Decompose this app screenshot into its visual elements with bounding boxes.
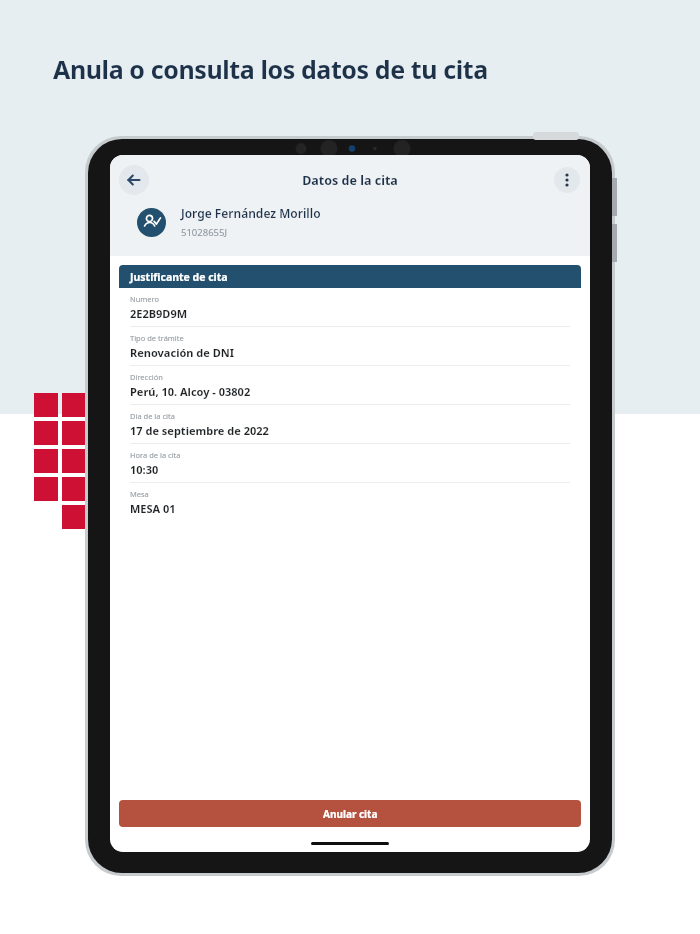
staticText: Anular cita xyxy=(323,807,378,821)
staticText: Tipo de trámite xyxy=(130,333,184,343)
staticText: 10:30 xyxy=(130,462,159,477)
staticText: MESA 01 xyxy=(130,501,176,516)
staticText: Mesa xyxy=(130,489,149,499)
staticText: Justificante de cita xyxy=(130,270,228,284)
staticText: Hora de la cita xyxy=(130,450,181,460)
staticText: 51028655J xyxy=(181,226,228,239)
staticText: 17 de septiembre de 2022 xyxy=(130,423,269,438)
staticText: Jorge Fernández Morillo xyxy=(181,205,321,221)
staticText: Numero xyxy=(130,294,160,304)
button[interactable]: Más opciones xyxy=(554,167,580,193)
staticText: Dirección xyxy=(130,372,163,382)
staticText: Datos de la cita xyxy=(302,172,398,189)
staticText: Anula o consulta los datos de tu cita xyxy=(53,52,488,86)
staticText: 2E2B9D9M xyxy=(130,306,188,321)
button[interactable]: Anular cita xyxy=(119,800,581,827)
staticText: Renovación de DNI xyxy=(130,345,234,360)
button[interactable]: Atrás xyxy=(119,165,149,195)
staticText: Día de la cita xyxy=(130,411,175,421)
staticText: Perú, 10. Alcoy - 03802 xyxy=(130,384,251,399)
